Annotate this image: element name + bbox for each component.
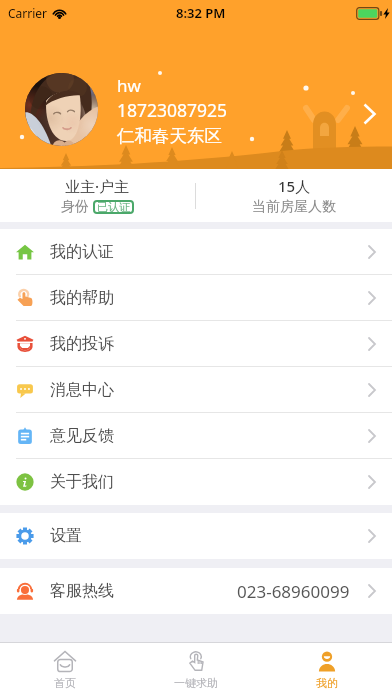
- button[interactable]: 关于我们: [0, 459, 392, 505]
- staticText: 仁和春天东区: [117, 125, 222, 147]
- staticText: 18723087925: [117, 98, 228, 122]
- staticText: Carrier: [8, 5, 48, 21]
- staticText: 023-68960099: [237, 580, 350, 603]
- button[interactable]: 我的认证: [0, 229, 392, 275]
- staticText: 关于我们: [50, 472, 114, 492]
- button[interactable]: Profile photo: [25, 73, 98, 146]
- staticText: 设置: [50, 526, 82, 546]
- button[interactable]: 客服热线: [0, 568, 392, 614]
- button[interactable]: 设置: [0, 513, 392, 559]
- button[interactable]: 一键求助: [130, 643, 261, 696]
- staticText: hw: [117, 74, 141, 97]
- staticText: 意见反馈: [50, 426, 114, 446]
- button[interactable]: 首页: [0, 643, 130, 696]
- staticText: 已认证: [97, 200, 130, 214]
- staticText: 我的: [316, 676, 338, 690]
- button[interactable]: 消息中心: [0, 367, 392, 413]
- staticText: 一键求助: [174, 676, 218, 690]
- button[interactable]: 我的帮助: [0, 275, 392, 321]
- button[interactable]: 我的: [261, 643, 392, 696]
- staticText: 8:32 PM: [176, 4, 226, 22]
- button[interactable]: 业主·户主: [0, 169, 195, 222]
- button[interactable]: 我的投诉: [0, 321, 392, 367]
- staticText: 首页: [54, 676, 76, 690]
- staticText: 我的认证: [50, 242, 114, 262]
- staticText: 业主·户主: [65, 176, 130, 196]
- staticText: 当前房屋人数: [252, 198, 336, 216]
- staticText: 客服热线: [50, 581, 114, 601]
- staticText: 15人: [278, 176, 311, 196]
- staticText: 我的帮助: [50, 288, 114, 308]
- button[interactable]: 意见反馈: [0, 413, 392, 459]
- button[interactable]: 15人: [196, 169, 392, 222]
- staticText: 消息中心: [50, 380, 114, 400]
- staticText: 我的投诉: [50, 334, 114, 354]
- staticText: 身份: [61, 198, 89, 216]
- button[interactable]: Open profile: [352, 97, 386, 131]
